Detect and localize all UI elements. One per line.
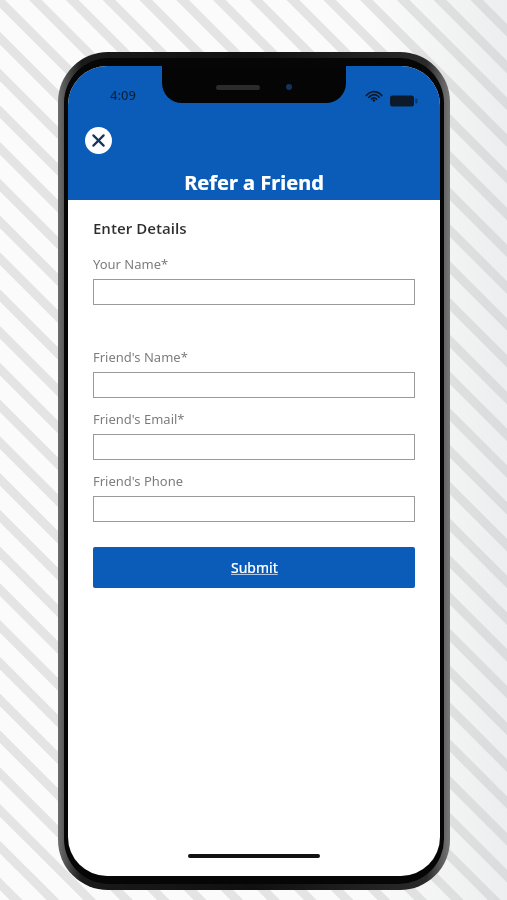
- button[interactable]: [93, 279, 415, 305]
- staticText: Enter Details: [93, 218, 187, 238]
- staticText: Submit: [231, 558, 278, 577]
- staticText: Refer a Friend: [68, 169, 440, 196]
- button[interactable]: Close: [85, 127, 112, 154]
- button[interactable]: Submit: [93, 547, 415, 588]
- staticText: Friend's Phone: [93, 472, 184, 490]
- staticText: 4:09: [110, 86, 136, 104]
- staticText: Friend's Name*: [93, 348, 188, 366]
- button[interactable]: [93, 496, 415, 522]
- staticText: Friend's Email*: [93, 410, 185, 428]
- button[interactable]: [93, 372, 415, 398]
- staticText: Your Name*: [93, 255, 169, 273]
- button[interactable]: [93, 434, 415, 460]
